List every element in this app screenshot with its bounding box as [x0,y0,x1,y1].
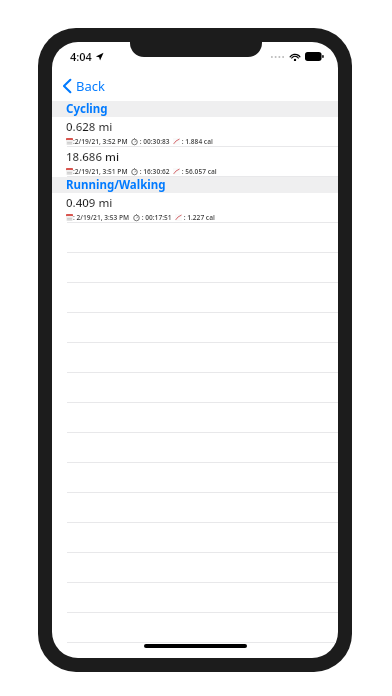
staticText: Back [76,77,105,95]
button[interactable] [52,403,338,433]
staticText: 4:04 [70,49,92,64]
button[interactable] [52,373,338,403]
staticText: : 1.227 cal [182,213,215,222]
button[interactable] [52,553,338,583]
button[interactable] [52,313,338,343]
button[interactable] [52,283,338,313]
staticText: : 1.884 cal [180,137,213,146]
staticText: :2/19/21, 3:52 PM [73,137,131,146]
button[interactable] [52,223,338,253]
button[interactable] [52,343,338,373]
staticText: : 16:30:62 [138,167,173,176]
button[interactable] [52,433,338,463]
button[interactable] [52,463,338,493]
staticText: : 00:17:51 [140,213,175,222]
staticText: Cycling [66,101,108,117]
button[interactable]: 0.409 mi [52,193,338,223]
button[interactable]: Back [52,73,115,99]
staticText: 0.628 mi [66,119,113,135]
button[interactable] [52,613,338,643]
staticText: : 00:30:83 [138,137,173,146]
staticText: Running/Walking [66,177,166,193]
staticText: : 56.057 cal [180,167,217,176]
staticText: 0.409 mi [66,195,113,211]
button[interactable] [52,253,338,283]
button[interactable]: 18.686 mi [52,147,338,177]
button[interactable] [52,523,338,553]
staticText: 18.686 mi [66,149,120,165]
staticText: : 2/19/21, 3:53 PM [73,213,133,222]
button[interactable] [52,493,338,523]
staticText: :2/19/21, 3:51 PM [73,167,131,176]
button[interactable] [52,583,338,613]
button[interactable]: 0.628 mi [52,117,338,147]
